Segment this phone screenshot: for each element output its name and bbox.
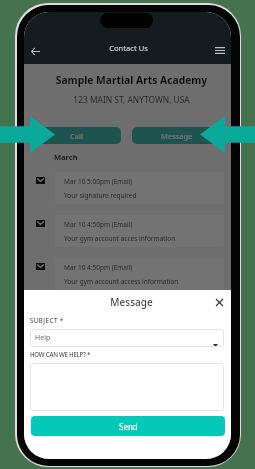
- staticText: Message: [28, 295, 231, 309]
- button[interactable]: Call: [32, 127, 121, 144]
- button[interactable]: Mar 10 4:50pm (Email): [55, 258, 224, 290]
- staticText: 123 MAIN ST, ANYTOWN, USA: [28, 94, 231, 105]
- staticText: Help: [35, 333, 51, 343]
- staticText: Mar 10 4:50pm (Email): [64, 220, 133, 229]
- staticText: Your gym account access information: [64, 277, 179, 286]
- staticText: Send: [119, 421, 138, 432]
- staticText: March: [54, 152, 78, 162]
- staticText: Sample Martial Arts Academy: [28, 73, 231, 87]
- button[interactable]: [30, 363, 224, 411]
- staticText: HOW CAN WE HELP? *: [30, 350, 90, 358]
- button[interactable]: Mar 10 5:00pm (Email): [55, 172, 224, 204]
- staticText: Message: [161, 131, 193, 141]
- button[interactable]: Back: [24, 40, 46, 62]
- button[interactable]: Send: [31, 416, 225, 436]
- staticText: Contact Us: [25, 43, 231, 53]
- staticText: Call: [70, 131, 83, 141]
- staticText: Your signature required: [64, 191, 137, 200]
- button[interactable]: Close: [209, 292, 230, 313]
- staticText: Mar 10 4:50pm (Email): [64, 263, 133, 272]
- button[interactable]: Message: [132, 127, 221, 144]
- button[interactable]: Help: [30, 329, 224, 347]
- button[interactable]: Mar 10 4:50pm (Email): [55, 215, 224, 247]
- staticText: Mar 10 5:00pm (Email): [64, 177, 133, 186]
- button[interactable]: Menu: [209, 39, 231, 61]
- staticText: SUBJECT *: [30, 316, 64, 324]
- staticText: Your gym account acces information: [64, 234, 176, 243]
